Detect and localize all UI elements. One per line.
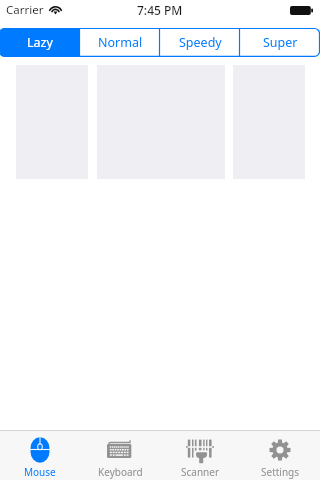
button[interactable]: Normal <box>80 28 160 57</box>
staticText: Normal <box>98 34 143 51</box>
staticText: Lazy <box>27 34 53 51</box>
staticText: Super <box>263 34 298 51</box>
staticText: Speedy <box>179 34 222 51</box>
staticText: Scanner <box>181 465 220 479</box>
button[interactable]: Speedy <box>160 28 240 57</box>
button[interactable]: Mouse <box>0 431 80 480</box>
button[interactable]: Settings <box>240 431 320 480</box>
staticText: Keyboard <box>98 465 143 479</box>
button[interactable]: Lazy <box>0 28 80 57</box>
staticText: Mouse <box>24 465 56 479</box>
staticText: Carrier <box>6 2 44 18</box>
button[interactable]: Super <box>240 28 320 57</box>
button[interactable]: Scanner <box>160 431 240 480</box>
staticText: 7:45 PM <box>137 2 183 18</box>
staticText: Settings <box>261 465 300 479</box>
button[interactable]: Keyboard <box>80 431 160 480</box>
